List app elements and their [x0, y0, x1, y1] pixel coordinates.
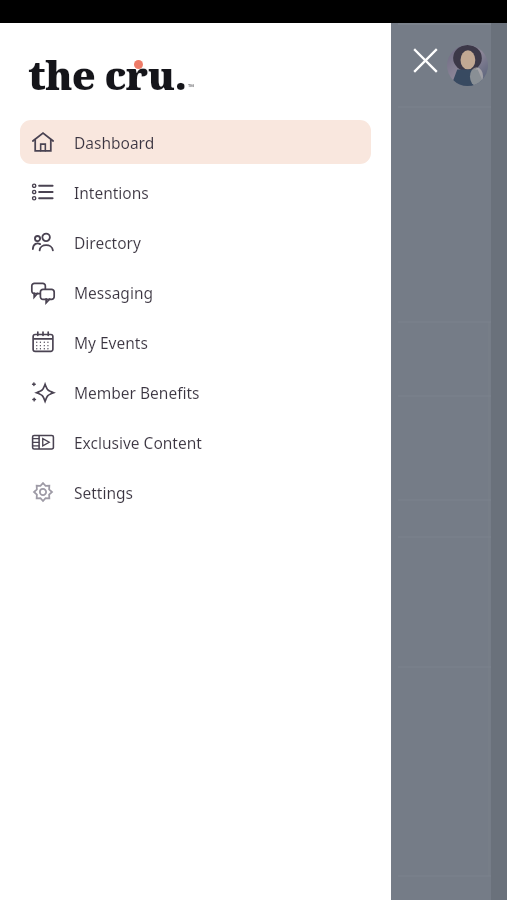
staticText: Exclusive Content	[74, 432, 202, 453]
button[interactable]: Messaging	[20, 270, 371, 314]
button[interactable]: Exclusive Content	[20, 420, 371, 464]
staticText: Directory	[74, 232, 141, 253]
staticText: Member Benefits	[74, 382, 200, 403]
staticText: ™	[188, 81, 195, 92]
button[interactable]: Profile	[447, 45, 488, 86]
staticText: Settings	[74, 482, 133, 503]
staticText: Dashboard	[74, 132, 155, 153]
button[interactable]: Directory	[20, 220, 371, 264]
button[interactable]: Close navigation drawer	[406, 41, 445, 80]
button[interactable]: My Events	[20, 320, 371, 364]
staticText: My Events	[74, 332, 148, 353]
staticText: the cru.	[28, 47, 187, 101]
staticText: Intentions	[74, 182, 149, 203]
staticText: Messaging	[74, 282, 153, 303]
button[interactable]: Dashboard	[20, 120, 371, 164]
button[interactable]: Member Benefits	[20, 370, 371, 414]
button[interactable]: Settings	[20, 470, 371, 514]
button[interactable]: Intentions	[20, 170, 371, 214]
